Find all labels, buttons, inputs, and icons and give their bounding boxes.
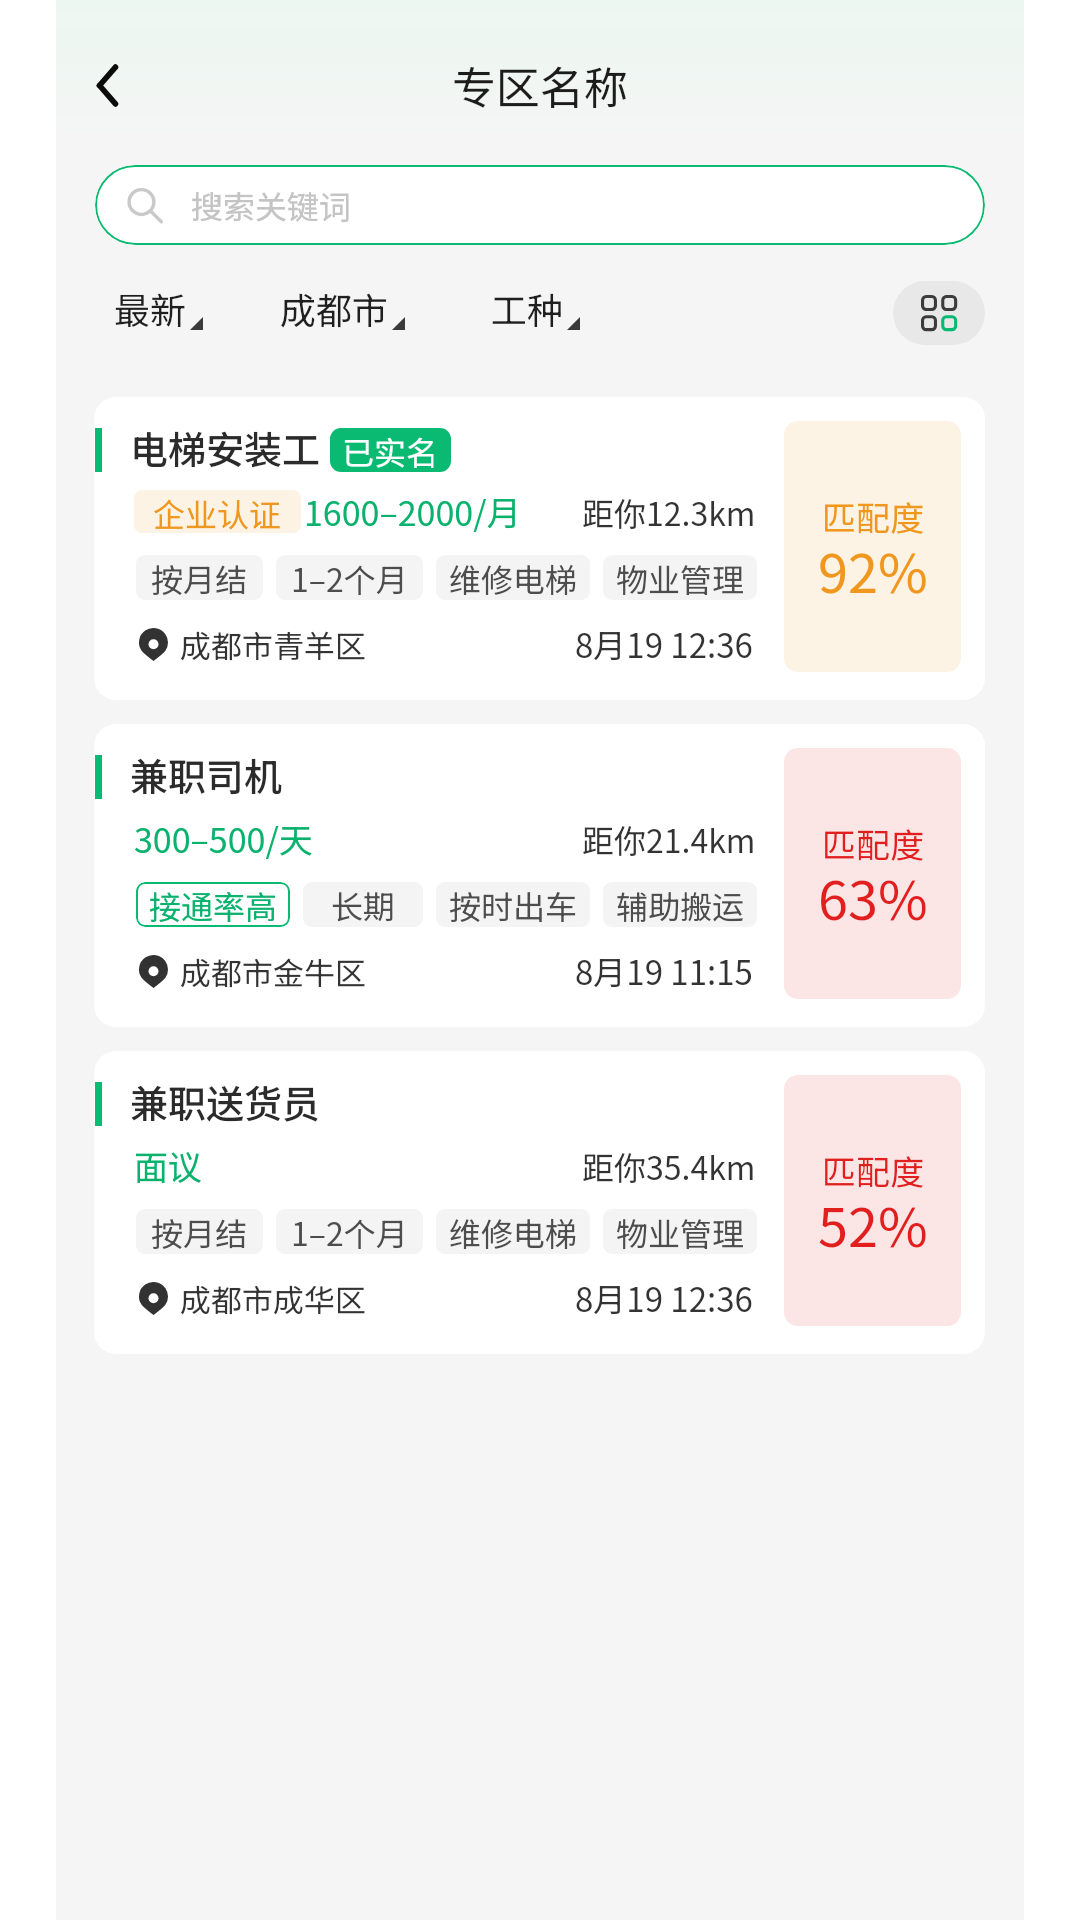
staticText: 专区名称 [452, 53, 628, 117]
staticText: 成都市青羊区 [180, 622, 366, 667]
staticText: 搜索关键词 [191, 182, 352, 228]
staticText: 按月结 [151, 1209, 248, 1254]
button[interactable]: Back [65, 43, 149, 127]
button[interactable]: Grid view [893, 281, 985, 345]
staticText: 接通率高 [149, 882, 278, 927]
staticText: 按时出车 [449, 882, 578, 927]
staticText: 长期 [331, 882, 396, 927]
staticText: 距你21.4km [582, 816, 756, 862]
staticText: 维修电梯 [449, 555, 578, 600]
staticText: 电梯安装工 [130, 420, 321, 475]
staticText: 成都市 [280, 282, 389, 334]
staticText: 匹配度 [822, 492, 924, 541]
staticText: 300–500/天 [134, 814, 313, 863]
staticText: 8月19 12:36 [575, 1274, 753, 1322]
button[interactable]: 搜索关键词 [95, 165, 985, 245]
staticText: 1–2个月 [291, 555, 408, 600]
staticText: 匹配度 [822, 1146, 924, 1195]
button[interactable]: 匹配度 [94, 724, 985, 1027]
staticText: 物业管理 [616, 555, 745, 600]
staticText: 匹配度 [822, 819, 924, 868]
button[interactable]: 匹配度 [94, 1051, 985, 1354]
staticText: 8月19 12:36 [575, 620, 753, 668]
staticText: 1600–2000/月 [304, 487, 521, 536]
staticText: 最新 [114, 282, 187, 334]
staticText: 工种 [491, 282, 564, 334]
button[interactable]: 工种 [491, 282, 580, 334]
staticText: 维修电梯 [449, 1209, 578, 1254]
staticText: 兼职送货员 [130, 1074, 321, 1129]
staticText: 52% [818, 1184, 928, 1262]
staticText: 企业认证 [153, 490, 282, 533]
staticText: 已实名 [342, 428, 439, 472]
button[interactable]: 成都市 [280, 282, 405, 334]
staticText: 8月19 11:15 [575, 947, 753, 995]
staticText: 物业管理 [616, 1209, 745, 1254]
staticText: 兼职司机 [130, 747, 283, 802]
button[interactable]: 匹配度 [94, 397, 985, 700]
staticText: 距你35.4km [582, 1143, 756, 1189]
staticText: 按月结 [151, 555, 248, 600]
staticText: 面议 [134, 1141, 202, 1190]
staticText: 距你12.3km [582, 489, 756, 535]
button[interactable]: 最新 [114, 282, 203, 334]
staticText: 1–2个月 [291, 1209, 408, 1254]
staticText: 辅助搬运 [616, 882, 745, 927]
staticText: 成都市金牛区 [180, 949, 366, 994]
staticText: 成都市成华区 [180, 1276, 366, 1321]
staticText: 63% [818, 857, 928, 935]
staticText: 92% [818, 530, 928, 608]
